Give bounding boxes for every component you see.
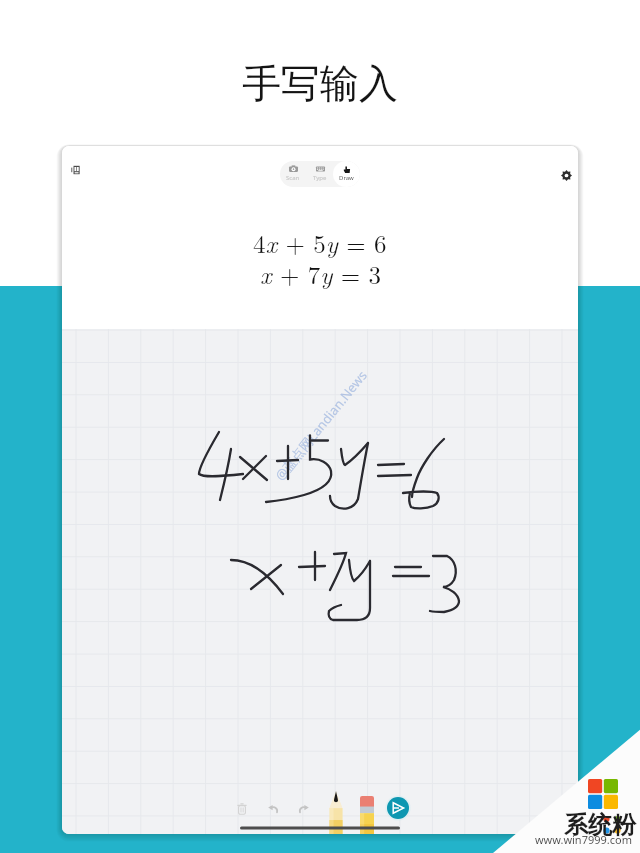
- staticText: Type: [313, 174, 327, 182]
- button[interactable]: Send: [385, 795, 411, 821]
- staticText: 4x + 5y = 6: [253, 225, 387, 260]
- button[interactable]: Scan: [280, 161, 306, 187]
- button[interactable]: Draw: [333, 161, 360, 187]
- button[interactable]: Undo: [264, 800, 282, 818]
- button[interactable]: Pencil: [329, 791, 343, 834]
- button[interactable]: Settings: [556, 165, 576, 185]
- button[interactable]: Delete: [233, 800, 251, 818]
- button[interactable]: Redo: [295, 800, 313, 818]
- staticText: @蓝点网Landian.News: [271, 366, 371, 484]
- staticText: Scan: [286, 174, 300, 182]
- staticText: x + 7y = 3: [260, 256, 381, 291]
- staticText: 手写输入: [0, 59, 640, 108]
- button[interactable]: Documents: [65, 160, 85, 180]
- staticText: 系统粉: [436, 810, 636, 840]
- staticText: www.win7999.com: [432, 832, 632, 847]
- button[interactable]: Type: [306, 161, 333, 187]
- button[interactable]: Eraser: [360, 796, 374, 834]
- staticText: Draw: [339, 174, 354, 182]
